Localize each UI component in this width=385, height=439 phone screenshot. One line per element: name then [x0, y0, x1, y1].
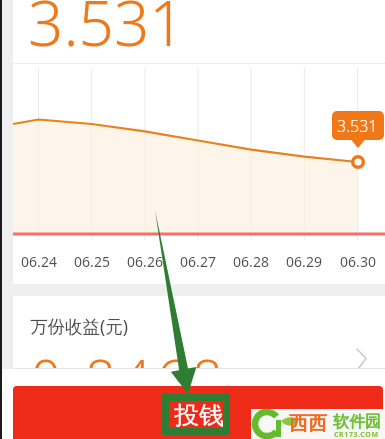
button[interactable]: 投钱 [169, 401, 223, 428]
staticText: 06.30 [332, 252, 384, 271]
staticText: 3.531 [28, 0, 185, 64]
staticText: 软件园 [333, 412, 381, 432]
staticText: 06.25 [66, 252, 118, 271]
staticText: 06.26 [119, 252, 171, 271]
staticText: 06.24 [13, 252, 65, 271]
staticText: 万份收益(元) [30, 314, 128, 338]
staticText: 06.27 [172, 252, 224, 271]
staticText: 0.8468 [31, 341, 229, 369]
button[interactable] [13, 386, 383, 439]
staticText: 06.29 [278, 252, 330, 271]
button[interactable]: 万份收益(元) [0, 296, 385, 369]
other: 详情 [355, 348, 367, 369]
staticText: 投钱 [174, 400, 224, 427]
staticText: CR173.COM [334, 430, 379, 439]
staticText: 西西 [289, 412, 327, 436]
staticText: 06.28 [225, 252, 277, 271]
staticText: 3.531 [337, 115, 378, 137]
